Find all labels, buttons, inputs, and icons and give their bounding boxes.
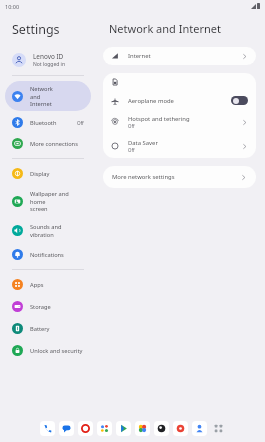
button[interactable]: Wallpaper and home screen xyxy=(5,186,91,216)
button[interactable]: Sounds and vibration xyxy=(5,219,91,242)
button[interactable]: Photos xyxy=(135,421,150,436)
staticText: Battery xyxy=(30,325,50,333)
staticText: Network and Internet xyxy=(30,85,53,107)
staticText: Internet xyxy=(128,52,151,60)
button[interactable]: Unlock and security xyxy=(5,341,91,360)
button[interactable]: Storage xyxy=(5,297,91,316)
staticText: More network settings xyxy=(112,173,175,181)
staticText: Off xyxy=(77,120,84,126)
button[interactable]: SIM cards xyxy=(103,73,256,91)
button[interactable]: Messages xyxy=(59,421,74,436)
button[interactable]: Aeroplane mode xyxy=(103,91,256,110)
staticText: Notifications xyxy=(30,251,64,259)
button[interactable]: More network settings xyxy=(103,166,256,188)
staticText: Storage xyxy=(30,303,51,311)
button[interactable]: Play Store xyxy=(116,421,131,436)
staticText: 10:00 xyxy=(5,3,20,10)
button[interactable]: Battery xyxy=(5,319,91,338)
button[interactable]: Data Saver xyxy=(103,134,256,158)
staticText: Data Saver xyxy=(128,139,158,147)
staticText: Network and Internet xyxy=(109,21,221,36)
button[interactable]: Notifications xyxy=(5,245,91,264)
staticText: Settings xyxy=(12,21,60,38)
button[interactable]: Network and Internet xyxy=(5,81,91,111)
button[interactable]: Opera xyxy=(78,421,93,436)
button[interactable]: All apps xyxy=(211,421,226,436)
staticText: Bluetooth xyxy=(30,119,57,127)
staticText: Wallpaper and home screen xyxy=(30,190,84,212)
button[interactable]: Apps xyxy=(5,275,91,294)
staticText: Sounds and vibration xyxy=(30,223,84,238)
button[interactable]: Contacts xyxy=(192,421,207,436)
staticText: Display xyxy=(30,170,50,178)
staticText: Hotspot and tethering xyxy=(128,115,190,123)
button[interactable]: Display xyxy=(5,164,91,183)
button[interactable]: Maps xyxy=(97,421,112,436)
button[interactable]: Bluetooth xyxy=(5,113,91,132)
button[interactable]: Phone xyxy=(40,421,55,436)
button[interactable]: Internet xyxy=(103,47,256,65)
staticText: Not logged in xyxy=(33,61,65,68)
button[interactable]: Lenovo ID xyxy=(5,50,91,70)
staticText: More connections xyxy=(30,140,78,148)
button[interactable]: More connections xyxy=(5,134,91,153)
staticText: Lenovo ID xyxy=(33,52,64,61)
button[interactable]: Hotspot and tethering xyxy=(103,110,256,134)
staticText: Aeroplane mode xyxy=(128,97,174,105)
button[interactable]: Aeroplane mode xyxy=(231,96,248,105)
button[interactable]: Recorder xyxy=(173,421,188,436)
staticText: Off xyxy=(128,147,135,153)
staticText: Apps xyxy=(30,281,44,289)
button[interactable]: Camera xyxy=(154,421,169,436)
staticText: Off xyxy=(128,123,135,129)
staticText: Unlock and security xyxy=(30,347,83,355)
